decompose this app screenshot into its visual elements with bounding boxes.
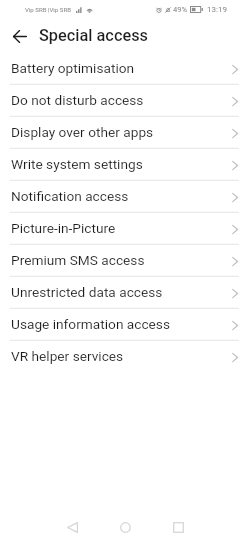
button[interactable]: Home	[105, 513, 145, 541]
button[interactable]: Back	[52, 513, 92, 541]
staticText: Picture-in-Picture	[11, 220, 116, 236]
button[interactable]: Battery optimisation	[0, 53, 250, 85]
staticText: Vip SRB |Vip SRB	[25, 6, 71, 13]
staticText: Battery optimisation	[11, 60, 135, 76]
staticText: Premium SMS access	[11, 252, 145, 268]
staticText: 13:19	[207, 5, 227, 14]
button[interactable]: Back	[8, 24, 32, 48]
button[interactable]: Notification access	[0, 181, 250, 213]
button[interactable]: Recents	[158, 513, 198, 541]
staticText: Unrestricted data access	[11, 284, 163, 300]
staticText: Display over other apps	[11, 124, 154, 140]
staticText: Notification access	[11, 188, 129, 204]
button[interactable]: Do not disturb access	[0, 85, 250, 117]
button[interactable]: Picture-in-Picture	[0, 213, 250, 245]
button[interactable]: Premium SMS access	[0, 245, 250, 277]
staticText: Special access	[39, 26, 149, 45]
staticText: Write system settings	[11, 156, 143, 172]
staticText: 49%	[173, 5, 188, 14]
button[interactable]: Usage information access	[0, 309, 250, 341]
button[interactable]: Display over other apps	[0, 117, 250, 149]
button[interactable]: VR helper services	[0, 341, 250, 373]
staticText: Usage information access	[11, 316, 170, 332]
button[interactable]: Write system settings	[0, 149, 250, 181]
staticText: Do not disturb access	[11, 92, 144, 108]
staticText: VR helper services	[11, 348, 124, 364]
button[interactable]: Unrestricted data access	[0, 277, 250, 309]
